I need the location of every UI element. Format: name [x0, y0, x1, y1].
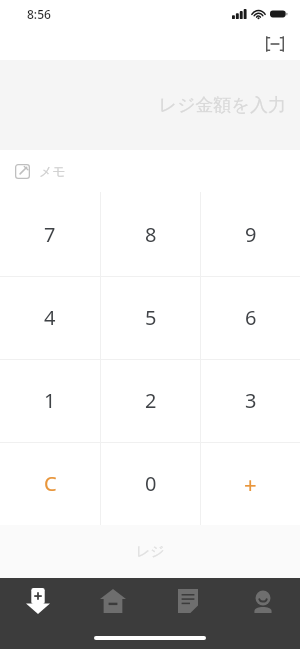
staticText: 7 [44, 221, 56, 248]
staticText: 4 [44, 304, 56, 331]
button[interactable]: Add purchase [0, 578, 75, 624]
staticText: 8:56 [27, 6, 51, 22]
button[interactable]: レジ金額を入力 [0, 60, 300, 150]
button[interactable]: C [0, 442, 100, 525]
button[interactable]: Account [225, 578, 300, 624]
staticText: レジ [136, 543, 165, 561]
button[interactable]: 3 [201, 359, 300, 442]
staticText: C [44, 470, 57, 497]
button[interactable]: 6 [201, 276, 300, 359]
staticText: 0 [145, 470, 157, 497]
staticText: 5 [145, 304, 157, 331]
button[interactable]: Notes [150, 578, 225, 624]
staticText: + [244, 469, 257, 499]
button[interactable]: 8 [101, 192, 200, 276]
button[interactable]: 0 [101, 442, 200, 525]
staticText: 1 [44, 387, 56, 414]
staticText: 6 [245, 304, 257, 331]
staticText: 2 [145, 387, 157, 414]
button[interactable]: 7 [0, 192, 100, 276]
button[interactable]: Home [75, 578, 150, 624]
button[interactable]: + [201, 442, 300, 525]
button[interactable]: 2 [101, 359, 200, 442]
staticText: 3 [245, 387, 257, 414]
button[interactable]: 4 [0, 276, 100, 359]
button[interactable]: Collapse keypad [260, 29, 290, 59]
button[interactable]: メモ [0, 150, 300, 192]
staticText: 9 [245, 221, 257, 248]
staticText: 8 [145, 221, 157, 248]
button[interactable]: 5 [101, 276, 200, 359]
staticText: メモ [39, 163, 66, 179]
button[interactable]: 1 [0, 359, 100, 442]
staticText: レジ金額を入力 [158, 94, 286, 117]
button[interactable]: 9 [201, 192, 300, 276]
